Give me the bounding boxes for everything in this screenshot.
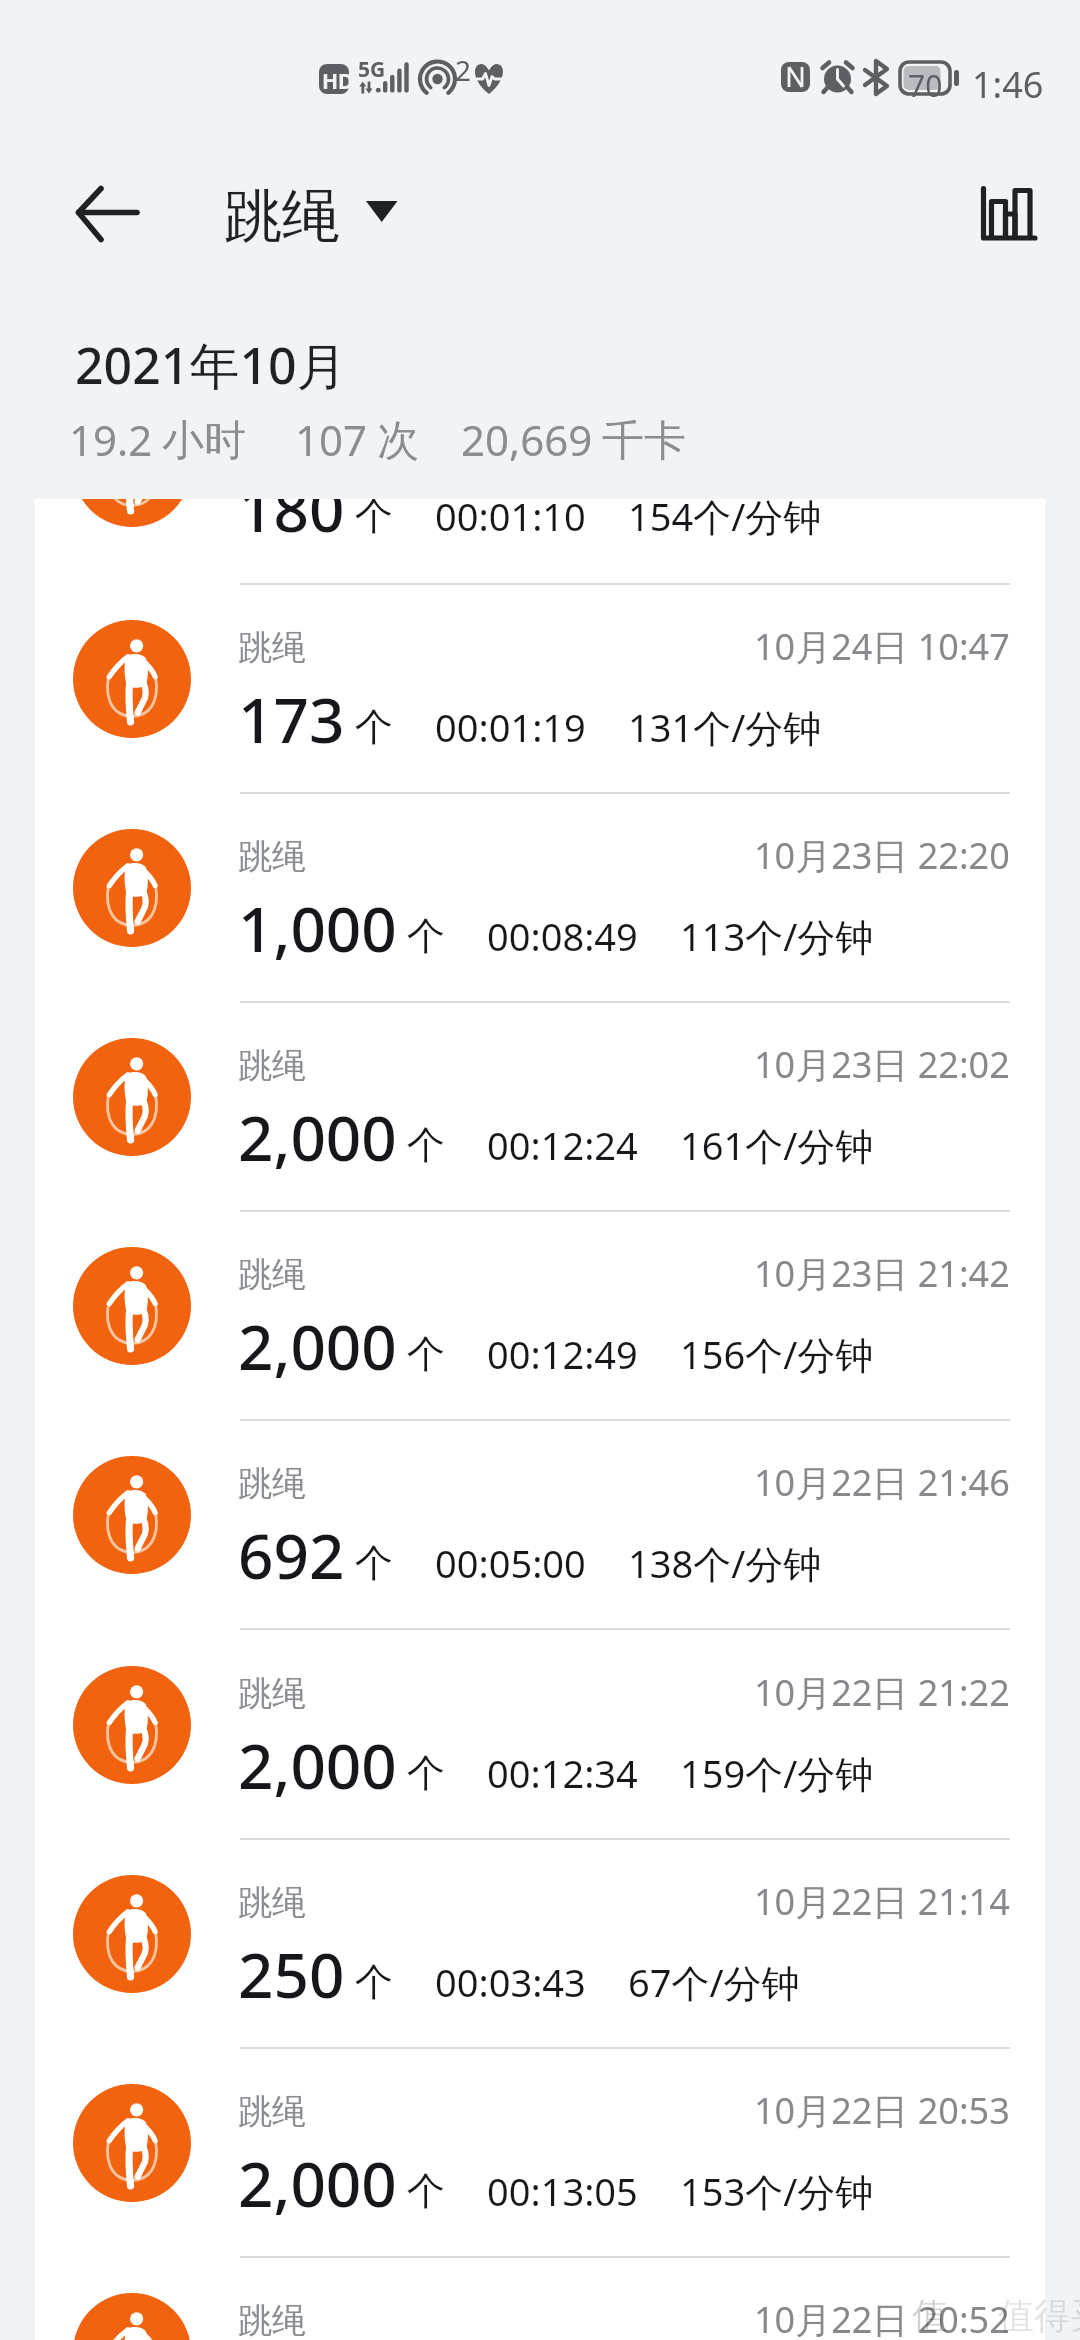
staticText: 2,000 xyxy=(238,1304,397,1388)
button[interactable]: Back xyxy=(60,168,160,268)
button[interactable]: 跳绳 xyxy=(35,2049,1045,2256)
staticText: 10月23日 22:02 xyxy=(754,1040,1010,1089)
staticText: 个 xyxy=(407,1121,445,1169)
staticText: 10月22日 21:14 xyxy=(754,1877,1010,1926)
staticText: 00:01:10 xyxy=(435,499,586,542)
staticText: 10月23日 22:20 xyxy=(754,831,1010,880)
staticText: 跳绳 xyxy=(238,1253,306,1296)
staticText: 2,000 xyxy=(238,1723,397,1807)
staticText: 173 xyxy=(238,677,345,761)
staticText: 2,000 xyxy=(238,2141,397,2225)
staticText: 00:13:05 xyxy=(487,2165,638,2217)
staticText: 1:46 xyxy=(972,60,1044,109)
button[interactable]: 跳绳 xyxy=(35,1840,1045,2047)
button[interactable]: 跳绳 xyxy=(35,1421,1045,1628)
staticText: 180 xyxy=(238,499,345,550)
button[interactable]: 跳绳 xyxy=(35,499,1045,581)
staticText: 值 xyxy=(912,2293,948,2338)
staticText: 跳绳 xyxy=(238,2299,306,2340)
staticText: 跳绳 xyxy=(238,2090,306,2133)
staticText: 次 xyxy=(377,415,419,468)
staticText: 10月22日 21:46 xyxy=(754,1458,1010,1507)
staticText: 小时 xyxy=(162,415,246,468)
button[interactable]: 跳绳 xyxy=(35,1631,1045,1838)
staticText: 个 xyxy=(355,1958,393,2006)
staticText: 2,000 xyxy=(238,1095,397,1179)
staticText: 131个/分钟 xyxy=(628,701,822,753)
staticText: 00:12:24 xyxy=(487,1119,638,1171)
staticText: 70 xyxy=(908,65,943,106)
staticText: 156个/分钟 xyxy=(680,1328,874,1380)
staticText: 00:05:00 xyxy=(435,1537,586,1589)
staticText: 154个/分钟 xyxy=(628,499,822,542)
staticText: 个 xyxy=(407,2167,445,2215)
staticText: 250 xyxy=(238,1932,345,2016)
button[interactable]: 跳绳 xyxy=(224,180,398,253)
staticText: 00:12:49 xyxy=(487,1328,638,1380)
button[interactable]: 跳绳 xyxy=(35,794,1045,1001)
button[interactable]: 跳绳 xyxy=(35,585,1045,792)
staticText: 跳绳 xyxy=(238,626,306,669)
staticText: 19.2 xyxy=(69,411,153,468)
staticText: 67个/分钟 xyxy=(628,1956,800,2008)
staticText: 跳绳 xyxy=(238,1881,306,1924)
staticText: 00:08:49 xyxy=(487,910,638,962)
staticText: 159个/分钟 xyxy=(680,1747,874,1799)
staticText: 10月24日 10:47 xyxy=(754,622,1010,671)
staticText: 2 xyxy=(455,51,472,89)
staticText: 跳绳 xyxy=(238,1672,306,1715)
staticText: 113个/分钟 xyxy=(680,910,874,962)
staticText: 个 xyxy=(407,1330,445,1378)
staticText: 跳绳 xyxy=(238,1462,306,1505)
staticText: 个 xyxy=(355,499,393,540)
staticText: 5G xyxy=(358,55,386,84)
staticText: HD xyxy=(322,67,354,96)
staticText: 2021年10月 xyxy=(75,331,347,399)
staticText: 00:01:19 xyxy=(435,701,586,753)
staticText: 20,669 xyxy=(461,411,593,468)
staticText: 千卡 xyxy=(602,415,686,468)
staticText: 10月22日 21:22 xyxy=(754,1668,1010,1717)
button[interactable]: 跳绳 xyxy=(35,1212,1045,1419)
button[interactable]: 跳绳 xyxy=(35,1003,1045,1210)
staticText: 10月22日 20:53 xyxy=(754,2086,1010,2135)
staticText: 161个/分钟 xyxy=(680,1119,874,1171)
staticText: 10月23日 21:42 xyxy=(754,1249,1010,1298)
staticText: 107 xyxy=(295,411,368,468)
staticText: 个 xyxy=(407,1749,445,1797)
staticText: 跳绳 xyxy=(238,1044,306,1087)
staticText: 跳绳 xyxy=(238,835,306,878)
staticText: 跳绳 xyxy=(224,180,340,253)
staticText: 个 xyxy=(355,1539,393,1587)
staticText: 138个/分钟 xyxy=(628,1537,822,1589)
staticText: 10月22日 20:52 xyxy=(754,2295,1010,2340)
staticText: 00:12:34 xyxy=(487,1747,638,1799)
staticText: 153个/分钟 xyxy=(680,2165,874,2217)
staticText: 值得买 xyxy=(998,2293,1080,2338)
button[interactable]: Statistics xyxy=(965,175,1050,260)
staticText: 1,000 xyxy=(238,886,397,970)
staticText: 个 xyxy=(407,912,445,960)
button[interactable]: 跳绳 xyxy=(35,2258,1045,2340)
staticText: 个 xyxy=(355,703,393,751)
staticText: 00:03:43 xyxy=(435,1956,586,2008)
staticText: 692 xyxy=(238,1513,345,1597)
